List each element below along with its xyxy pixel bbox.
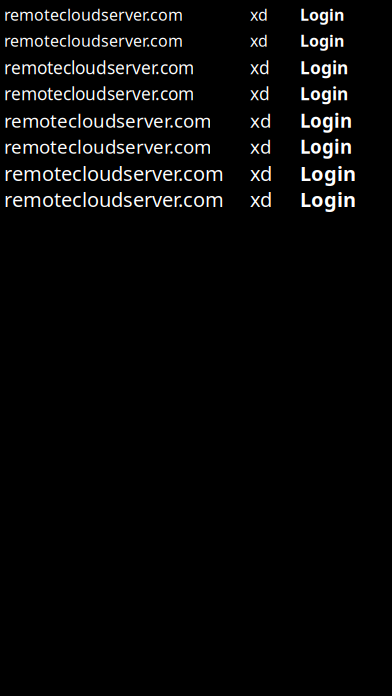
staticText: Login [300,4,344,25]
staticText: remotecloudserver.com [4,160,224,187]
staticText: xd [250,108,271,133]
staticText: Login [300,30,344,51]
staticText: xd [250,186,272,213]
staticText: xd [250,56,270,79]
staticText: remotecloudserver.com [4,186,224,213]
staticText: xd [250,82,270,105]
staticText: Login [300,160,356,187]
staticText: remotecloudserver.com [4,56,194,79]
staticText: xd [250,134,271,159]
staticText: Login [300,82,348,105]
staticText: Login [300,56,348,79]
staticText: Login [300,108,352,133]
staticText: xd [250,4,268,25]
staticText: remotecloudserver.com [4,82,194,105]
staticText: xd [250,30,268,51]
staticText: remotecloudserver.com [4,4,183,25]
staticText: Login [300,134,352,159]
staticText: remotecloudserver.com [4,134,211,159]
staticText: xd [250,160,272,187]
staticText: remotecloudserver.com [4,30,183,51]
staticText: Login [300,186,356,213]
staticText: remotecloudserver.com [4,108,211,133]
